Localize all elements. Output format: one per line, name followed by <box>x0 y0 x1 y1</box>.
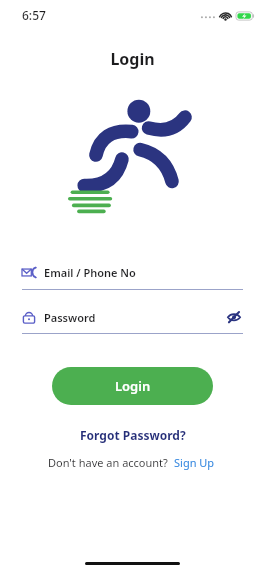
button[interactable]: Sign Up <box>172 453 217 472</box>
staticText: Don't have an account? <box>48 455 168 470</box>
staticText: Forgot Password? <box>80 427 186 443</box>
staticText: 6:57 <box>22 7 46 23</box>
button[interactable]: Forgot Password? <box>74 425 192 445</box>
button[interactable]: Show password <box>225 308 243 326</box>
staticText: Login <box>0 48 265 70</box>
button[interactable]: Email / Phone No <box>22 265 243 290</box>
staticText: Login <box>115 377 151 395</box>
button[interactable]: Password <box>22 308 243 334</box>
button[interactable]: Login <box>52 367 213 405</box>
staticText: Email / Phone No <box>44 265 136 280</box>
staticText: Password <box>44 310 96 325</box>
staticText: Sign Up <box>174 455 215 470</box>
